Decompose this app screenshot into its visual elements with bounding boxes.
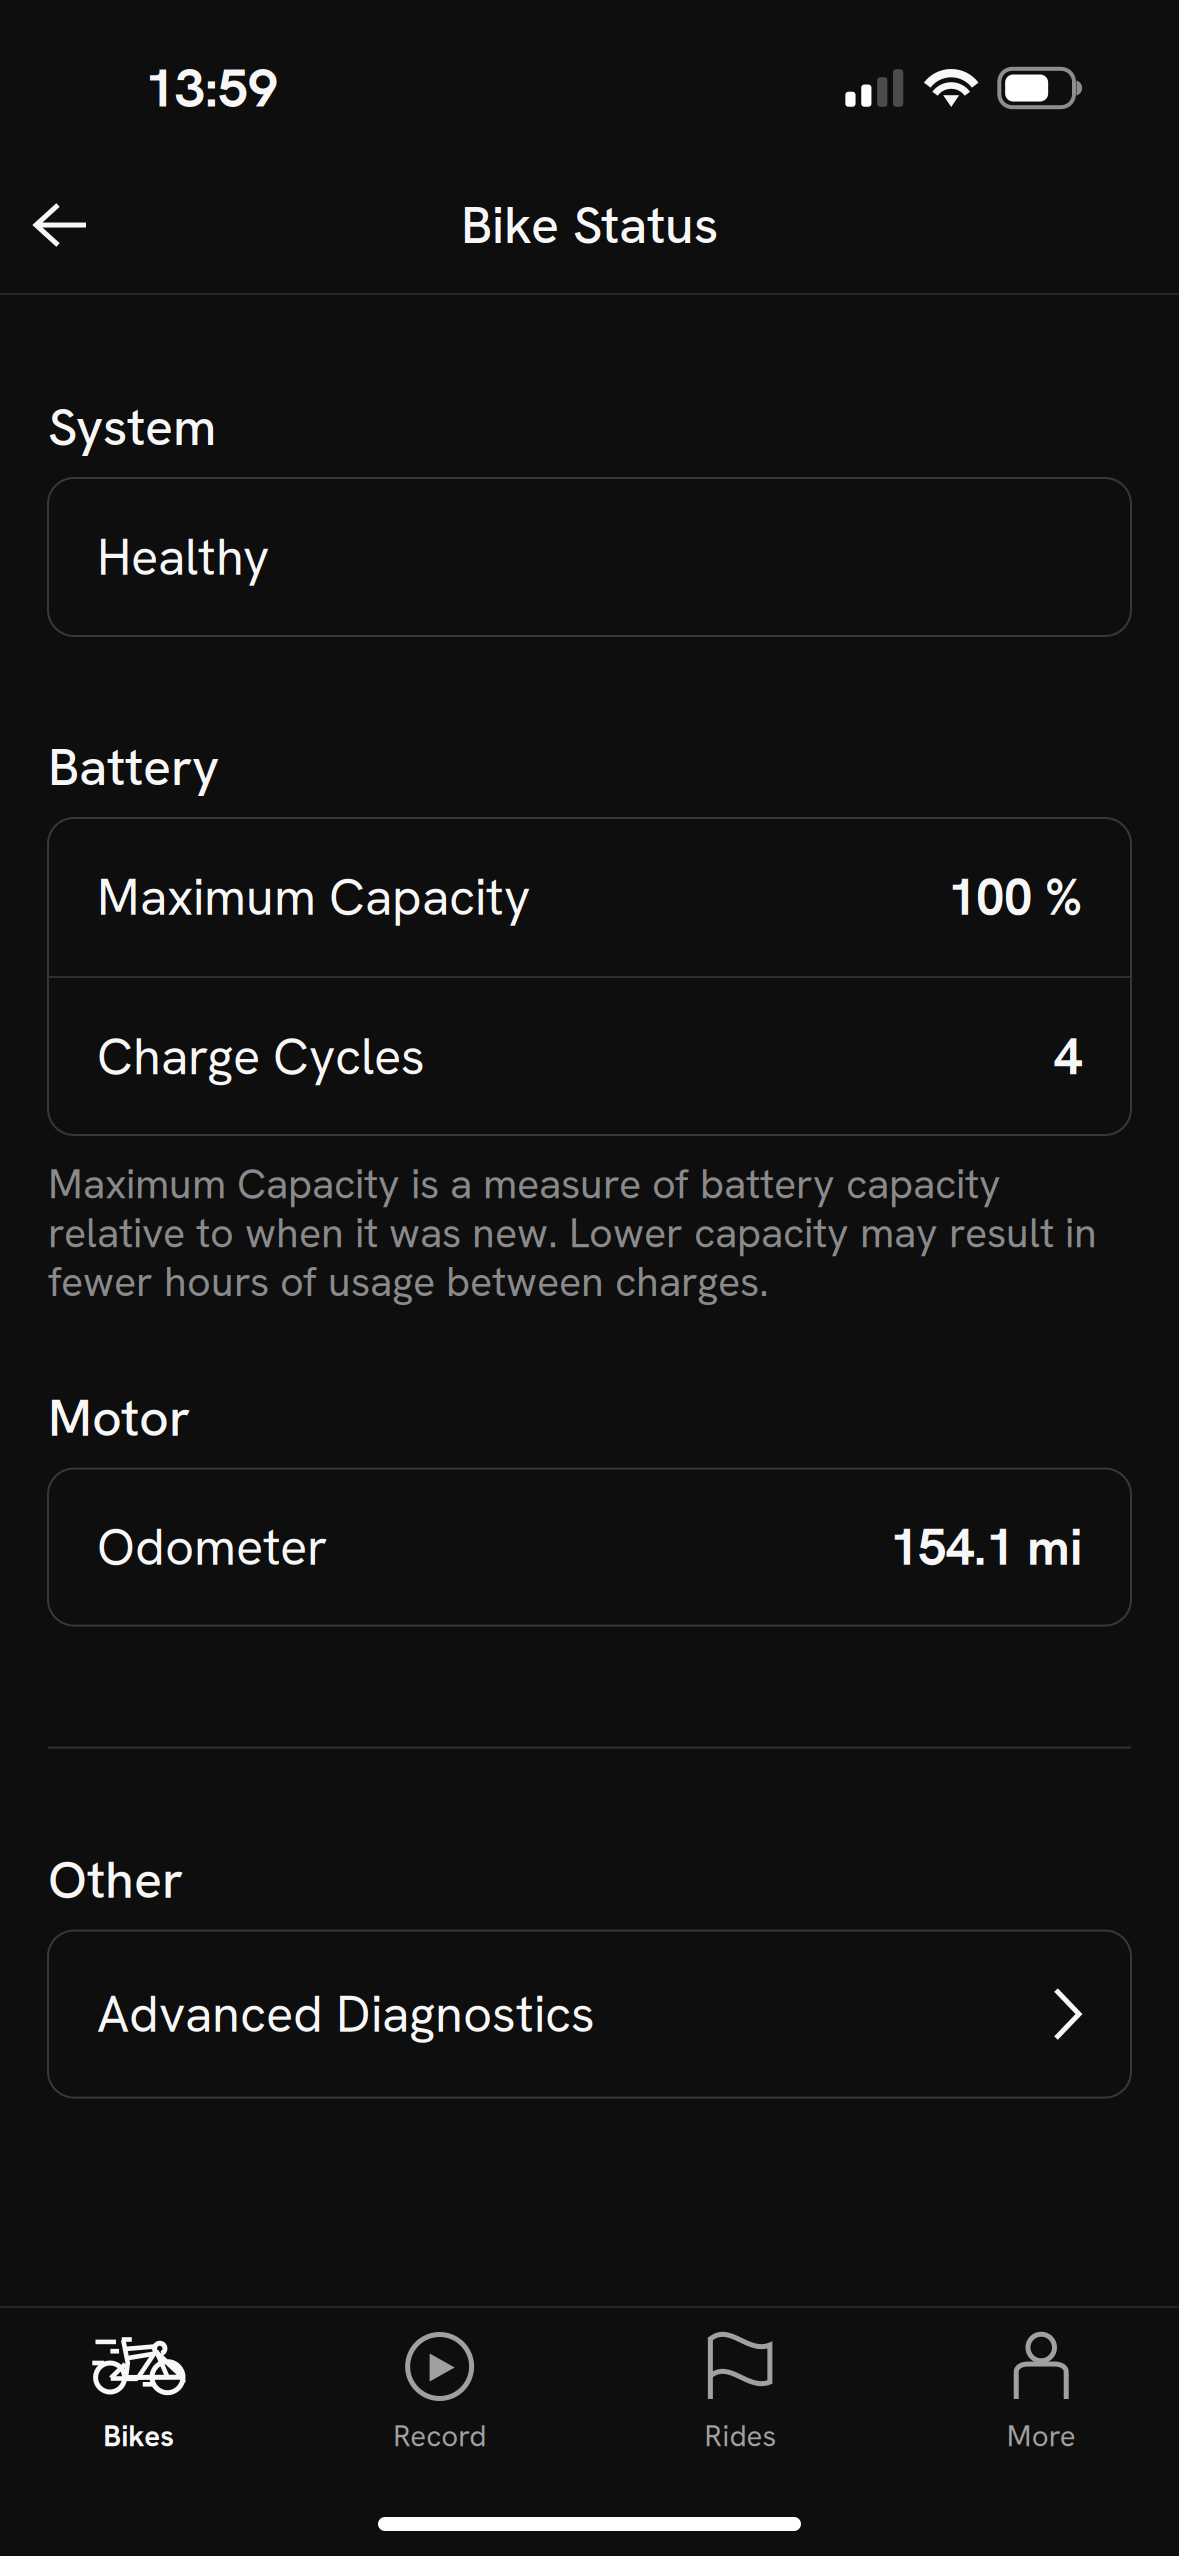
staticText: Record: [393, 2417, 486, 2455]
button[interactable]: More: [884, 2308, 1179, 2556]
staticText: 154.1 mi: [890, 1514, 1082, 1580]
button[interactable]: Record: [295, 2308, 590, 2556]
staticText: More: [1007, 2417, 1076, 2455]
staticText: System: [48, 393, 216, 461]
button[interactable]: Bikes: [0, 2308, 295, 2556]
staticText: Motor: [48, 1384, 190, 1451]
button[interactable]: Back: [6, 182, 116, 268]
button[interactable]: Advanced Diagnostics: [0, 1931, 1179, 2098]
staticText: Advanced Diagnostics: [97, 1981, 595, 2047]
staticText: 13:59: [145, 53, 278, 123]
staticText: 4: [1054, 1023, 1082, 1089]
staticText: Maximum Capacity: [97, 864, 530, 930]
staticText: Rides: [704, 2417, 776, 2455]
staticText: Odometer: [97, 1514, 328, 1580]
staticText: Healthy: [97, 524, 269, 590]
staticText: Battery: [48, 733, 219, 801]
staticText: Bikes: [103, 2417, 174, 2455]
staticText: Maximum Capacity is a measure of battery…: [48, 1157, 1097, 1309]
staticText: 100 %: [948, 864, 1082, 930]
staticText: Bike Status: [461, 191, 718, 259]
staticText: Charge Cycles: [97, 1023, 425, 1089]
staticText: Other: [48, 1846, 183, 1913]
button[interactable]: Rides: [589, 2308, 884, 2556]
